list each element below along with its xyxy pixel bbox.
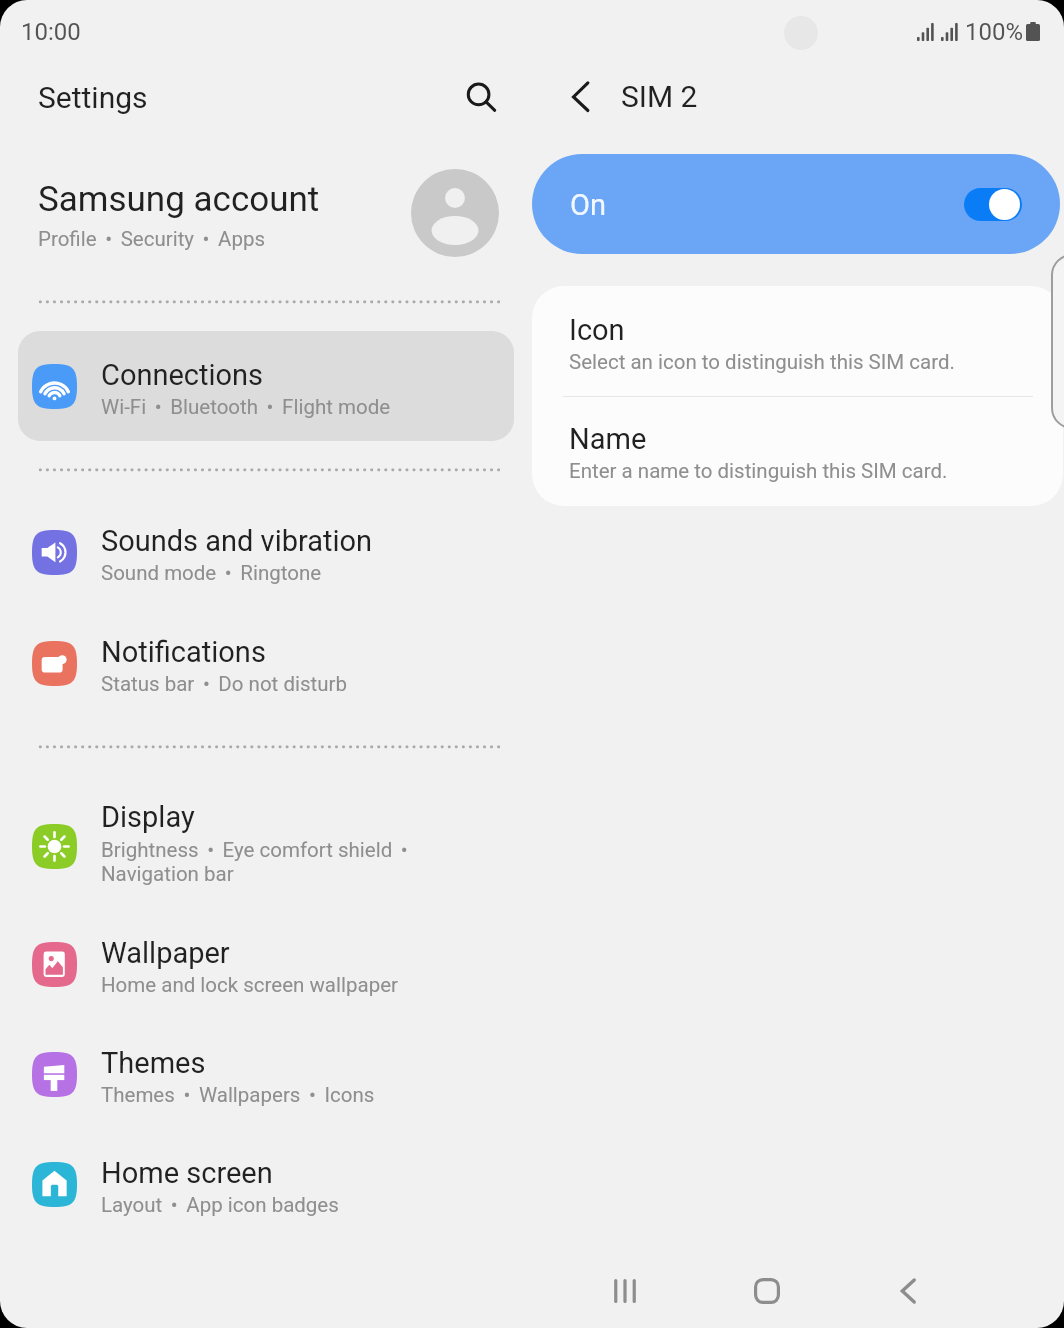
staticText: Wi-Fi • Bluetooth • Flight mode (101, 395, 391, 419)
staticText: Brightness • Eye comfort shield • Naviga… (101, 838, 408, 886)
staticText: Connections (101, 358, 264, 392)
staticText: Sound mode • Ringtone (101, 561, 322, 585)
staticText: Samsung account (38, 179, 320, 220)
button[interactable]: Home screen (18, 1129, 514, 1239)
staticText: Themes (101, 1046, 206, 1080)
button[interactable]: Samsung account (18, 163, 514, 273)
button[interactable]: On (532, 154, 1060, 254)
staticText: Sounds and vibration (101, 524, 373, 558)
button[interactable]: Sounds and vibration (18, 497, 514, 607)
staticText: SIM 2 (621, 79, 698, 114)
staticText: Home screen (101, 1156, 273, 1190)
staticText: Icon (569, 313, 625, 347)
button[interactable]: Edge panel handle (1051, 254, 1064, 429)
staticText: 10:00 (21, 18, 81, 46)
staticText: Layout • App icon badges (101, 1193, 339, 1217)
button[interactable]: Name (532, 397, 1063, 506)
staticText: Enter a name to distinguish this SIM car… (569, 459, 948, 483)
button[interactable]: Back (880, 1263, 936, 1319)
button[interactable]: Search (456, 73, 506, 123)
staticText: On (570, 188, 606, 222)
button[interactable]: Home (739, 1263, 795, 1319)
staticText: Select an icon to distinguish this SIM c… (569, 350, 955, 374)
staticText: Status bar • Do not disturb (101, 672, 347, 696)
button[interactable]: Themes (18, 1019, 514, 1129)
staticText: 100% (965, 18, 1024, 46)
staticText: Home and lock screen wallpaper (101, 973, 398, 997)
button[interactable]: Notifications (18, 608, 514, 718)
button[interactable]: Recent apps (597, 1263, 653, 1319)
button[interactable]: Navigate up (557, 72, 607, 122)
staticText: Wallpaper (101, 936, 230, 970)
staticText: Name (569, 422, 647, 456)
staticText: Themes • Wallpapers • Icons (101, 1083, 375, 1107)
button[interactable]: Wallpaper (18, 909, 514, 1019)
button[interactable]: Display (18, 783, 514, 909)
staticText: Profile • Security • Apps (38, 227, 266, 251)
staticText: Notifications (101, 635, 266, 669)
staticText: Display (101, 800, 195, 834)
button[interactable]: Icon (532, 286, 1063, 396)
button[interactable]: Connections (18, 331, 514, 441)
staticText: Settings (38, 80, 148, 115)
